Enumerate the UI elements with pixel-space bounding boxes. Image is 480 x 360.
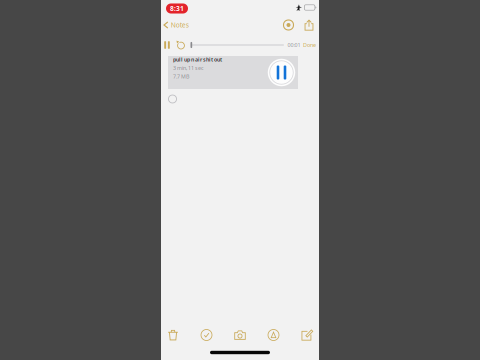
button[interactable]: Recording options [282,18,295,31]
staticText: pull up n air shit out [173,56,222,63]
button[interactable]: Delete note [164,327,182,343]
staticText: 7.7 MB [173,73,189,80]
button[interactable]: Markup [264,327,282,343]
button[interactable]: Notes [161,18,190,32]
button[interactable]: New note [298,327,316,343]
button[interactable]: Share [303,18,315,31]
staticText: 3 min, 11 sec [173,64,204,71]
staticText: 8:31 [170,4,184,13]
staticText: Notes [171,21,189,29]
button[interactable]: Camera [231,327,249,343]
button[interactable]: Checklist [197,327,215,343]
staticText: 00:01 [287,41,300,49]
button[interactable]: Skip back 15 seconds [175,39,186,50]
button[interactable]: Pause playback [267,58,296,87]
button[interactable]: Pause recording [162,39,171,50]
button[interactable]: Done [303,39,316,51]
staticText: Done [303,41,316,49]
